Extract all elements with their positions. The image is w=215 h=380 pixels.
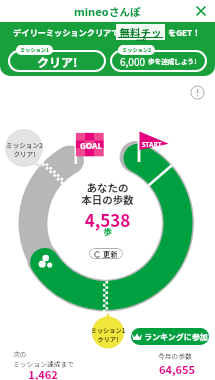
button[interactable]: 更新 [89,248,123,259]
staticText: ミッション2 [5,140,44,150]
staticText: 今月の歩数 [158,351,192,361]
staticText: 1,462 [13,366,73,380]
staticText: をGET！ [168,26,201,38]
staticText: 無料チップ [116,25,165,41]
staticText: さんぽ [109,4,141,19]
button[interactable]: 閉じる [194,4,208,18]
staticText: クリア! [5,149,44,159]
staticText: ランキングに参加 [144,331,208,343]
staticText: 4,538 [0,207,215,232]
staticText: GOAL [80,140,102,151]
staticText: 6,000 [120,54,145,68]
staticText: 更新 [103,249,118,259]
staticText: ミッション1 [88,326,128,335]
staticText: ミッション2 [122,46,151,54]
staticText: 次の [13,349,27,359]
staticText: クリア! [37,53,78,70]
button[interactable]: クリア! [8,45,106,72]
staticText: mineo [74,4,109,19]
staticText: 歩を達成しよう! [148,56,197,66]
staticText: 本日の歩数 [0,192,215,207]
staticText: START [142,140,162,149]
staticText: 歩 [0,225,215,237]
button[interactable]: ランキングに参加 [131,328,209,345]
button[interactable]: 説明 [190,85,205,100]
staticText: ミッション1 [20,46,49,54]
staticText: 64,655 [141,361,213,377]
staticText: ミッション達成まで [13,359,75,369]
staticText: デイリーミッションクリアで [13,26,120,38]
staticText: あなたの [0,180,215,195]
button[interactable]: 6,000 [110,45,207,72]
staticText: クリア! [88,335,128,344]
